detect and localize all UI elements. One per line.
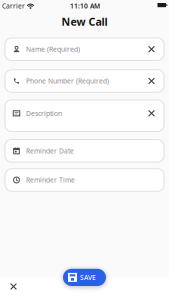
button[interactable]: Name (Required) (5, 38, 164, 60)
button[interactable]: Reminder Time (5, 169, 164, 191)
staticText: New Call (61, 14, 107, 29)
staticText: Phone Number (Required) (26, 77, 109, 85)
staticText: Reminder Date (26, 146, 74, 155)
staticText: SAVE (80, 273, 96, 282)
button[interactable]: Phone Number (Required) (5, 70, 164, 92)
staticText: Carrier (2, 2, 25, 10)
button[interactable]: Description (5, 100, 164, 131)
button[interactable]: Clear (143, 42, 160, 57)
staticText: Name (Required) (26, 45, 80, 54)
staticText: Reminder Time (26, 176, 75, 184)
button[interactable]: Clear (143, 73, 160, 88)
button[interactable]: Save (63, 269, 106, 286)
button[interactable]: Close ad (6, 279, 21, 294)
staticText: 11:10 AM (70, 2, 100, 10)
button[interactable]: Reminder Date (5, 140, 164, 162)
button[interactable]: Clear (143, 106, 160, 121)
staticText: Description (26, 109, 62, 118)
